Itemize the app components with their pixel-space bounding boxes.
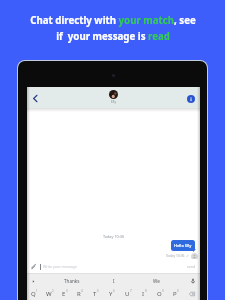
button[interactable]: Back bbox=[28, 91, 42, 105]
staticText: 9 bbox=[162, 289, 164, 293]
button[interactable]: I bbox=[93, 274, 135, 288]
staticText: Today 10:36 bbox=[27, 234, 200, 239]
staticText: 2 bbox=[52, 289, 54, 293]
staticText: Thanks bbox=[64, 278, 80, 284]
button[interactable]: Profile bbox=[191, 253, 198, 260]
button[interactable]: P bbox=[168, 290, 184, 300]
staticText: E bbox=[62, 290, 66, 298]
staticText: Elly bbox=[111, 100, 117, 104]
button[interactable]: W bbox=[42, 290, 57, 300]
staticText: 1 bbox=[36, 289, 38, 293]
staticText: I bbox=[142, 290, 145, 298]
button[interactable]: More suggestions bbox=[29, 277, 37, 285]
button[interactable]: R bbox=[72, 290, 88, 300]
button[interactable]: Attach file bbox=[30, 263, 37, 270]
staticText: 6 bbox=[113, 289, 115, 293]
button[interactable]: O bbox=[152, 290, 168, 300]
button[interactable]: E bbox=[57, 290, 72, 300]
staticText: 8 bbox=[145, 289, 147, 293]
button[interactable]: We bbox=[135, 274, 177, 288]
staticText: W bbox=[46, 290, 52, 298]
staticText: if your message is read bbox=[56, 30, 170, 43]
staticText: T bbox=[93, 290, 97, 298]
staticText: P bbox=[173, 290, 177, 298]
button[interactable]: T bbox=[88, 290, 104, 300]
button[interactable]: I bbox=[136, 290, 152, 300]
button[interactable]: Voice input bbox=[189, 277, 197, 285]
staticText: 3 bbox=[66, 289, 68, 293]
staticText: Hello Elly bbox=[174, 243, 192, 248]
button[interactable]: Y bbox=[104, 290, 120, 300]
staticText: We bbox=[153, 278, 160, 284]
button[interactable]: Backspace bbox=[184, 290, 200, 300]
button[interactable]: Elly bbox=[109, 90, 118, 104]
staticText: U bbox=[125, 290, 130, 298]
staticText: R bbox=[77, 290, 81, 298]
button[interactable]: Q bbox=[27, 290, 42, 300]
staticText: O bbox=[157, 290, 162, 298]
button[interactable]: Hello Elly bbox=[174, 243, 192, 248]
button[interactable]: U bbox=[120, 290, 136, 300]
staticText: Today 10:36 ✓ bbox=[166, 253, 189, 257]
button[interactable]: Thanks bbox=[50, 274, 93, 288]
staticText: 4 bbox=[81, 289, 83, 293]
button[interactable]: Info bbox=[185, 92, 196, 103]
staticText: 7 bbox=[130, 289, 132, 293]
staticText: 5 bbox=[97, 289, 99, 293]
staticText: Q bbox=[31, 290, 36, 298]
staticText: Chat directly with your match, see bbox=[30, 14, 196, 27]
button[interactable]: send bbox=[187, 264, 196, 269]
staticText: 0 bbox=[177, 289, 179, 293]
staticText: Y bbox=[109, 290, 113, 298]
staticText: I bbox=[113, 278, 115, 284]
staticText: Write your message bbox=[43, 264, 77, 269]
